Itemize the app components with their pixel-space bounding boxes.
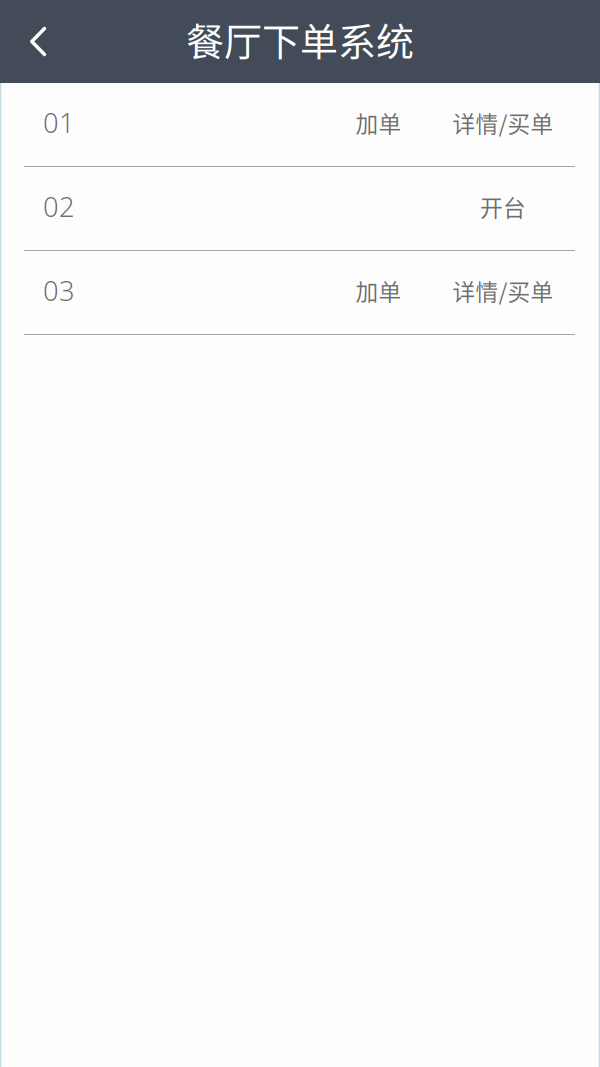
staticText: 餐厅下单系统 bbox=[186, 11, 414, 66]
button[interactable]: Back bbox=[0, 0, 62, 83]
staticText: 详情/买单 bbox=[452, 274, 553, 307]
staticText: 02 bbox=[43, 188, 75, 225]
button[interactable]: 加单 bbox=[327, 83, 430, 166]
button[interactable]: 02 bbox=[0, 167, 327, 250]
staticText: 加单 bbox=[355, 106, 401, 139]
button[interactable]: 详情/买单 bbox=[430, 83, 576, 166]
staticText: 详情/买单 bbox=[452, 106, 553, 139]
button[interactable]: 详情/买单 bbox=[430, 251, 576, 334]
staticText: 01 bbox=[43, 104, 75, 141]
staticText: 03 bbox=[43, 272, 75, 309]
staticText: 开台 bbox=[480, 190, 526, 223]
button[interactable]: 01 bbox=[0, 83, 327, 166]
button[interactable]: 03 bbox=[0, 251, 327, 334]
button[interactable]: 开台 bbox=[430, 167, 576, 250]
staticText: 加单 bbox=[355, 274, 401, 307]
button[interactable]: 加单 bbox=[327, 251, 430, 334]
